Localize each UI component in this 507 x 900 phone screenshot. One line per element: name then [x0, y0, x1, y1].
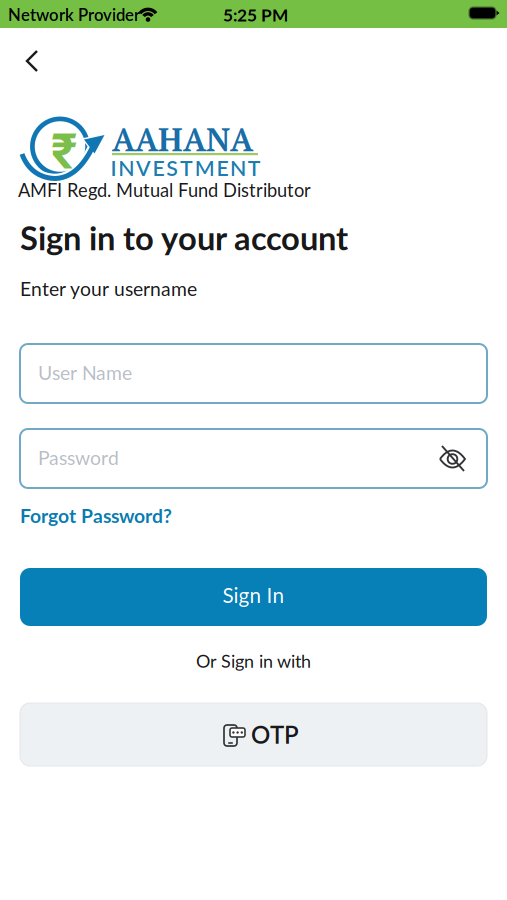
staticText: User Name [38, 361, 132, 384]
button[interactable]: Sign In [20, 568, 487, 626]
staticText: S [166, 155, 178, 181]
staticText: Forgot Password? [20, 504, 172, 527]
staticText: ₹ [50, 122, 77, 180]
staticText: N [118, 155, 134, 181]
staticText: Enter your username [20, 277, 197, 300]
button[interactable]: Show password [438, 445, 468, 473]
staticText: Password [38, 446, 119, 469]
staticText: I [110, 155, 116, 181]
button[interactable]: Forgot Password? [20, 504, 172, 527]
staticText: Sign in to your account [20, 218, 348, 257]
button[interactable]: Back [24, 48, 50, 74]
staticText: AMFI Regd. Mutual Fund Distributor [18, 179, 311, 201]
button[interactable]: OTP [20, 703, 487, 766]
staticText: M [195, 155, 215, 181]
staticText: OTP [251, 720, 299, 749]
staticText: T [248, 155, 261, 181]
staticText: 5:25 PM [223, 4, 288, 25]
staticText: N [230, 155, 246, 181]
staticText: E [153, 155, 165, 181]
staticText: Network Provider [8, 4, 140, 24]
staticText: Sign In [222, 583, 284, 607]
staticText: E [216, 155, 228, 181]
staticText: V [136, 155, 151, 181]
staticText: AAHANA [112, 118, 253, 160]
staticText: T [180, 155, 193, 181]
staticText: Or Sign in with [196, 650, 311, 672]
